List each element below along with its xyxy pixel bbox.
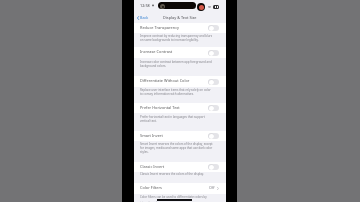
staticText: Prefer horizontal text in languages that…: [140, 115, 205, 119]
staticText: Classic Invert: [140, 164, 165, 169]
staticText: Smart Invert reverses the colors of the …: [140, 142, 213, 146]
staticText: Back: [140, 15, 149, 20]
staticText: Increase color contrast between app fore…: [140, 60, 212, 64]
button[interactable]: Smart Invert: [134, 131, 226, 141]
staticText: for images, media and some apps that use…: [140, 146, 213, 150]
staticText: Color Filters: [140, 185, 162, 190]
other: Recording: [197, 3, 205, 11]
staticText: 12:58: [140, 3, 150, 8]
staticText: Replace user interface items that rely s…: [140, 88, 211, 92]
staticText: Reduce Transparency: [140, 25, 179, 30]
button[interactable]: Reduce Transparency: [134, 23, 226, 33]
button[interactable]: Toggle: [208, 79, 219, 85]
staticText: Off: [209, 185, 215, 190]
staticText: intensity or hue.: [140, 201, 163, 202]
button[interactable]: Toggle: [208, 25, 219, 31]
button[interactable]: Prefer Horizontal Text: [134, 103, 226, 113]
button[interactable]: Back: [137, 15, 149, 20]
staticText: background colors.: [140, 64, 167, 68]
button[interactable]: Toggle: [208, 105, 219, 111]
staticText: Improve contrast by reducing transparenc…: [140, 34, 213, 38]
button[interactable]: Toggle: [208, 133, 219, 139]
staticText: Differentiate Without Color: [140, 78, 190, 83]
button[interactable]: Toggle: [208, 50, 219, 56]
staticText: Increase Contrast: [140, 49, 173, 54]
button[interactable]: Differentiate Without Color: [134, 76, 226, 87]
button[interactable]: Color Filters: [134, 183, 226, 194]
staticText: Color filters can be used to differentia…: [140, 195, 207, 199]
staticText: vertical text.: [140, 119, 157, 123]
button[interactable]: Increase Contrast: [134, 47, 226, 58]
button[interactable]: Toggle: [208, 164, 219, 170]
staticText: styles.: [140, 150, 149, 154]
staticText: Classic Invert reverses the colors of th…: [140, 172, 204, 176]
staticText: to convey information with alternatives.: [140, 92, 194, 96]
staticText: Display & Text Size: [163, 15, 197, 20]
button[interactable]: Classic Invert: [134, 162, 226, 172]
staticText: Prefer Horizontal Text: [140, 105, 180, 110]
staticText: Smart Invert: [140, 133, 163, 138]
staticText: on some backgrounds to increase legibili…: [140, 38, 199, 42]
